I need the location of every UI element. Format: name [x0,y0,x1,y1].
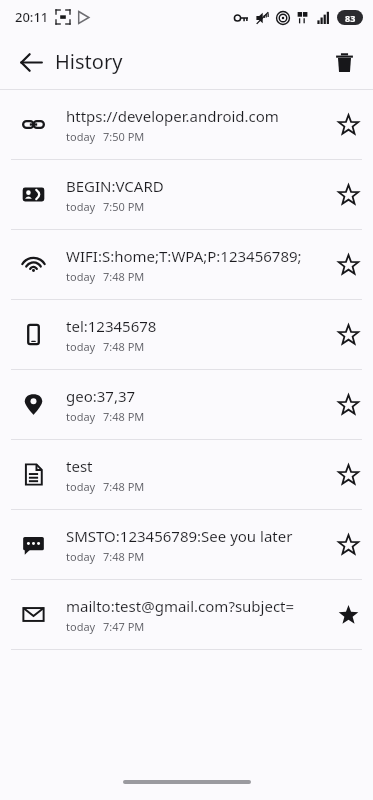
button[interactable]: tel:12345678 [0,300,373,369]
staticText: today [66,339,96,354]
staticText: test [66,456,93,476]
staticText: 20:11 [15,8,49,26]
button[interactable]: https://developer.android.com [0,90,373,159]
staticText: 7:48 PM [103,269,145,284]
staticText: 7:48 PM [103,339,145,354]
staticText: https://developer.android.com [66,106,279,126]
button[interactable]: Delete history [323,41,365,83]
staticText: 7:47 PM [103,619,145,634]
staticText: today [66,199,96,214]
button[interactable]: Favorite [323,370,373,439]
button[interactable]: Unfavorite [323,580,373,649]
button[interactable]: Favorite [323,440,373,509]
staticText: today [66,129,96,144]
staticText: 7:48 PM [103,409,145,424]
button[interactable]: Favorite [323,90,373,159]
staticText: History [55,48,123,75]
staticText: SMSTO:123456789:See you later [66,526,293,546]
button[interactable]: BEGIN:VCARD [0,160,373,229]
staticText: mailto:test@gmail.com?subject= [66,596,295,616]
button[interactable]: mailto:test@gmail.com?subject= [0,580,373,649]
button[interactable]: test [0,440,373,509]
staticText: today [66,479,96,494]
button[interactable]: Favorite [323,510,373,579]
staticText: 7:48 PM [103,549,145,564]
button[interactable]: Favorite [323,300,373,369]
button[interactable]: WIFI:S:home;T:WPA;P:123456789; [0,230,373,299]
staticText: today [66,549,96,564]
button[interactable]: Favorite [323,230,373,299]
staticText: 7:50 PM [103,129,145,144]
staticText: geo:37,37 [66,386,136,406]
staticText: BEGIN:VCARD [66,176,164,196]
staticText: today [66,269,96,284]
staticText: WIFI:S:home;T:WPA;P:123456789; [66,246,302,266]
staticText: today [66,409,96,424]
button[interactable]: geo:37,37 [0,370,373,439]
staticText: 7:50 PM [103,199,145,214]
button[interactable]: Back [10,41,52,83]
staticText: 7:48 PM [103,479,145,494]
staticText: today [66,619,96,634]
button[interactable]: Favorite [323,160,373,229]
button[interactable]: SMSTO:123456789:See you later [0,510,373,579]
staticText: 83 [345,12,356,24]
staticText: tel:12345678 [66,316,157,336]
